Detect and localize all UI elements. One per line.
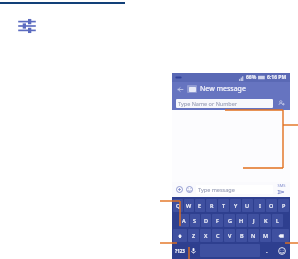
- staticText: Type message: [198, 186, 235, 193]
- staticText: J: [253, 217, 255, 224]
- button[interactable]: U: [242, 199, 253, 212]
- staticText: C: [216, 232, 220, 239]
- staticText: 66%: [246, 74, 257, 81]
- button[interactable]: D: [201, 214, 211, 227]
- staticText: D: [204, 217, 209, 224]
- button[interactable]: Attach: [175, 185, 184, 194]
- staticText: E: [198, 202, 202, 209]
- staticText: I: [259, 202, 261, 209]
- staticText: X: [204, 232, 208, 239]
- button[interactable]: Add recipient: [276, 98, 286, 108]
- staticText: ?123: [175, 248, 185, 254]
- staticText: N: [251, 232, 256, 239]
- button[interactable]: Z: [188, 229, 199, 242]
- staticText: Y: [234, 202, 238, 209]
- button[interactable]: H: [236, 214, 247, 227]
- button[interactable]: I: [254, 199, 265, 212]
- staticText: U: [245, 202, 250, 209]
- button[interactable]: B: [236, 229, 247, 242]
- button[interactable]: R: [206, 199, 217, 212]
- staticText: B: [240, 232, 244, 239]
- button[interactable]: Backspace: [272, 229, 289, 242]
- button[interactable]: V: [224, 229, 235, 242]
- button[interactable]: Voice input: [188, 244, 199, 257]
- staticText: .: [266, 247, 268, 255]
- button[interactable]: X: [200, 229, 211, 242]
- button[interactable]: N: [248, 229, 259, 242]
- staticText: R: [210, 202, 214, 209]
- staticText: V: [228, 232, 232, 239]
- staticText: Q: [176, 202, 181, 209]
- button[interactable]: A: [179, 214, 189, 227]
- staticText: W: [186, 202, 192, 209]
- button[interactable]: C: [212, 229, 223, 242]
- button[interactable]: W: [184, 199, 194, 212]
- staticText: Z: [192, 232, 196, 239]
- button[interactable]: Type Name or Number: [176, 99, 273, 108]
- button[interactable]: O: [266, 199, 277, 212]
- button[interactable]: M: [260, 229, 271, 242]
- button[interactable]: Send SMS: [275, 183, 287, 196]
- button[interactable]: Shift: [173, 229, 187, 242]
- button[interactable]: G: [224, 214, 235, 227]
- staticText: 6:16 PM: [267, 74, 287, 81]
- staticText: T: [222, 202, 226, 209]
- staticText: M: [263, 232, 269, 239]
- staticText: A: [182, 217, 186, 224]
- button[interactable]: Q: [173, 199, 183, 212]
- staticText: P: [282, 202, 286, 209]
- staticText: S: [193, 217, 197, 224]
- button[interactable]: T: [218, 199, 229, 212]
- staticText: K: [264, 217, 268, 224]
- staticText: Type Name or Number: [178, 100, 238, 107]
- button[interactable]: F: [212, 214, 223, 227]
- button[interactable]: Y: [230, 199, 241, 212]
- button[interactable]: ?123: [173, 244, 187, 257]
- button[interactable]: E: [195, 199, 205, 212]
- staticText: G: [228, 217, 232, 224]
- staticText: H: [239, 217, 244, 224]
- button[interactable]: P: [278, 199, 289, 212]
- button[interactable]: Back: [176, 85, 185, 94]
- button[interactable]: L: [272, 214, 283, 227]
- staticText: SMS: [277, 183, 286, 188]
- button[interactable]: Emoji: [185, 185, 194, 194]
- staticText: L: [276, 217, 279, 224]
- staticText: F: [216, 217, 219, 224]
- button[interactable]: Type message: [196, 185, 273, 194]
- staticText: O: [269, 202, 274, 209]
- button[interactable]: Settings: [16, 15, 38, 37]
- staticText: New message: [200, 84, 246, 94]
- button[interactable]: K: [260, 214, 271, 227]
- button[interactable]: J: [248, 214, 259, 227]
- button[interactable]: S: [190, 214, 200, 227]
- button[interactable]: .: [261, 244, 273, 257]
- button[interactable]: Emoji keyboard: [274, 244, 289, 257]
